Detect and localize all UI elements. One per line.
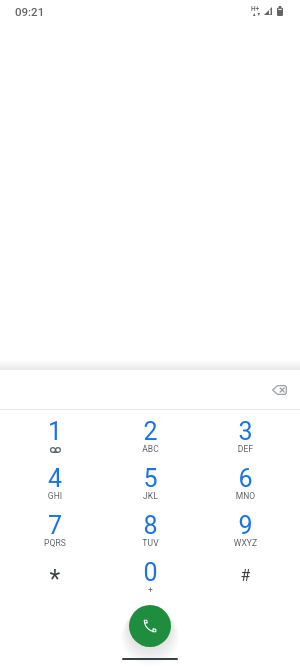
button[interactable]: # (198, 558, 293, 598)
button[interactable]: 9 (198, 511, 293, 551)
staticText: 2 (103, 417, 198, 446)
button[interactable]: Call (129, 605, 171, 647)
staticText: + (103, 585, 198, 595)
staticText: 7 (7, 511, 103, 540)
staticText: PQRS (7, 538, 103, 548)
button[interactable]: 7 (7, 511, 103, 551)
staticText: JKL (103, 491, 198, 501)
staticText: H+ (251, 5, 260, 13)
button[interactable]: * (7, 558, 103, 598)
staticText: 09:21 (15, 5, 45, 18)
button[interactable]: 4 (7, 464, 103, 504)
staticText: 3 (198, 417, 293, 446)
staticText: WXYZ (198, 538, 293, 548)
staticText: ABC (103, 444, 198, 454)
staticText: 9 (198, 511, 293, 540)
staticText: MNO (198, 491, 293, 501)
button[interactable]: 2 (103, 417, 198, 457)
button[interactable]: 6 (198, 464, 293, 504)
staticText: 8 (103, 511, 198, 540)
button[interactable]: Backspace (262, 373, 296, 407)
staticText: 5 (103, 464, 198, 493)
button[interactable]: 5 (103, 464, 198, 504)
button[interactable]: 8 (103, 511, 198, 551)
staticText: 1 (7, 417, 103, 446)
staticText: TUV (103, 538, 198, 548)
staticText: DEF (198, 444, 293, 454)
staticText: # (198, 566, 293, 585)
staticText: * (7, 565, 103, 594)
staticText: GHI (7, 491, 103, 501)
staticText: 0 (103, 558, 198, 587)
button[interactable]: 3 (198, 417, 293, 457)
staticText: 6 (198, 464, 293, 493)
button[interactable]: 0 (103, 558, 198, 598)
button[interactable]: 1 (7, 417, 103, 457)
staticText: 4 (7, 464, 103, 493)
